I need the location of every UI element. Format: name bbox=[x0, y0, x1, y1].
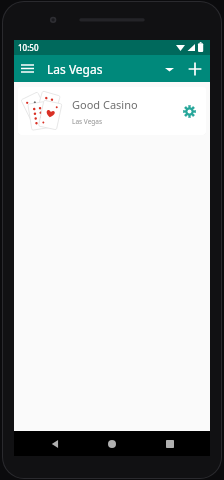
staticText: Las Vegas bbox=[47, 61, 103, 77]
staticText: 10:50 bbox=[18, 42, 39, 53]
button[interactable]: Add bbox=[181, 55, 208, 82]
staticText: Las Vegas bbox=[72, 117, 103, 126]
button[interactable]: Good Casino bbox=[18, 87, 206, 135]
button[interactable]: Home bbox=[95, 431, 129, 456]
button[interactable]: Filter dropdown bbox=[157, 57, 181, 81]
button[interactable]: Open navigation menu bbox=[14, 55, 41, 82]
button[interactable]: Recent apps bbox=[153, 431, 187, 456]
staticText: Good Casino bbox=[72, 97, 138, 112]
button[interactable]: Settings bbox=[174, 96, 204, 126]
button[interactable]: Back bbox=[38, 431, 72, 456]
